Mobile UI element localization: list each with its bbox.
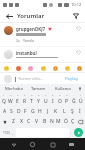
staticText: J	[47, 108, 49, 115]
button[interactable]: T	[28, 96, 35, 106]
button[interactable]: Emoji	[64, 65, 70, 71]
button[interactable]: N	[48, 117, 55, 126]
button[interactable]: Recents	[47, 139, 58, 150]
button[interactable]: Emoji	[15, 65, 21, 71]
button[interactable]: Like	[76, 50, 81, 55]
button[interactable]: Emoji	[27, 65, 33, 71]
button[interactable]: grupgenOKJ7	[0, 23, 85, 46]
staticText: Paylaş	[65, 76, 79, 82]
staticText: F	[24, 108, 27, 115]
staticText: 6	[38, 93, 40, 96]
button[interactable]: B	[41, 117, 48, 126]
button[interactable]: J	[44, 106, 52, 116]
staticText: H	[38, 108, 42, 115]
button[interactable]: G	[29, 106, 36, 116]
button[interactable]: Z	[9, 117, 17, 126]
button[interactable]: Q	[1, 96, 7, 106]
staticText: Yorum ekle...	[18, 76, 44, 82]
staticText: Tamam	[31, 86, 46, 92]
staticText: Ğ	[72, 98, 76, 105]
button[interactable]: ?123	[2, 128, 11, 137]
button[interactable]: A	[1, 106, 8, 116]
staticText: V	[35, 118, 39, 125]
staticText: 4	[24, 93, 26, 96]
staticText: R	[23, 98, 27, 105]
button[interactable]: Ö	[62, 117, 69, 126]
button[interactable]: E	[14, 96, 21, 106]
button[interactable]: Voice input	[76, 84, 83, 93]
button[interactable]: Emoji	[40, 65, 46, 71]
button[interactable]: Filter	[71, 11, 81, 21]
button[interactable]: Send	[74, 128, 83, 137]
staticText: B	[43, 118, 47, 125]
button[interactable]: K	[52, 106, 60, 116]
button[interactable]: C	[25, 117, 33, 126]
staticText: Ö	[64, 118, 68, 125]
button[interactable]: İ	[76, 106, 84, 116]
staticText: E	[16, 98, 19, 105]
button[interactable]: Ğ	[70, 96, 77, 106]
staticText: X	[20, 118, 23, 125]
staticText: D	[17, 108, 21, 115]
button[interactable]: Merhaba	[2, 84, 26, 93]
button[interactable]: S	[8, 106, 15, 116]
button[interactable]: Paylaş	[63, 74, 81, 84]
button[interactable]: Ş	[68, 106, 76, 116]
staticText: Ç	[71, 118, 75, 125]
button[interactable]: Tamam	[26, 84, 51, 93]
staticText: Merhaba	[5, 86, 23, 92]
staticText: Kullanıcı	[55, 86, 72, 92]
button[interactable]: Backspace	[76, 117, 84, 126]
button[interactable]: Ç	[69, 117, 76, 126]
button[interactable]: D	[15, 106, 22, 116]
button[interactable]: P	[63, 96, 70, 106]
button[interactable]: V	[33, 117, 41, 126]
staticText: U	[44, 98, 48, 105]
button[interactable]: Emoji	[76, 65, 82, 71]
button[interactable]: Keyboard	[66, 139, 77, 150]
button[interactable]: Kullanıcı	[51, 84, 76, 93]
staticText: O	[58, 98, 62, 105]
button[interactable]: X	[17, 117, 25, 126]
button[interactable]: M	[55, 117, 62, 126]
button[interactable]: Y	[35, 96, 42, 106]
staticText: .	[71, 130, 73, 135]
staticText: 0	[66, 93, 68, 96]
button[interactable]: R	[21, 96, 28, 106]
staticText: P	[65, 98, 69, 105]
button[interactable]: Comma	[11, 128, 15, 137]
staticText: S	[10, 108, 13, 115]
staticText: C	[27, 118, 31, 125]
staticText: Yanıtla	[23, 38, 34, 43]
button[interactable]: Emoji	[52, 65, 58, 71]
button[interactable]: I	[49, 96, 56, 106]
button[interactable]: Back	[4, 11, 14, 21]
staticText: G	[31, 108, 35, 115]
staticText: I	[52, 98, 54, 105]
button[interactable]: W	[7, 96, 14, 106]
button[interactable]: Shift	[1, 117, 9, 126]
staticText: ,	[12, 130, 14, 135]
staticText: 2	[10, 93, 12, 96]
button[interactable]: U	[42, 96, 49, 106]
button[interactable]: Home	[27, 139, 38, 150]
button[interactable]: L	[60, 106, 68, 116]
staticText: 8	[52, 93, 54, 96]
staticText: 5	[31, 93, 33, 96]
staticText: L	[63, 108, 66, 115]
staticText: 10:12	[71, 2, 82, 7]
staticText: İ	[79, 108, 81, 115]
button[interactable]: Period	[70, 128, 74, 137]
button[interactable]: F	[22, 106, 29, 116]
staticText: K	[54, 108, 58, 115]
button[interactable]: Emoji	[3, 65, 9, 71]
button[interactable]: Like	[76, 26, 81, 31]
button[interactable]: H	[36, 106, 44, 116]
button[interactable]: instanbul	[0, 47, 85, 62]
button[interactable]: Ü	[77, 96, 84, 106]
button[interactable]: Back	[8, 139, 19, 150]
staticText: T	[30, 98, 33, 105]
staticText: 1	[3, 93, 5, 96]
button[interactable]: O	[56, 96, 63, 106]
